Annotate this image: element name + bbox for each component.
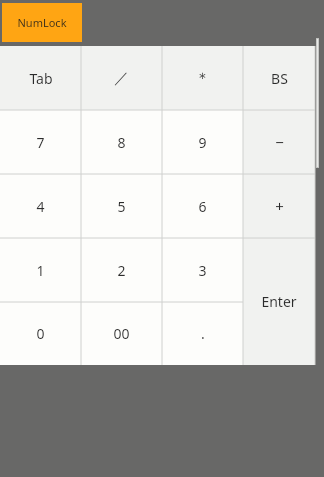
- staticText: 9: [198, 133, 207, 152]
- staticText: +: [275, 196, 284, 216]
- button[interactable]: 7: [0, 110, 81, 174]
- button[interactable]: 6: [162, 174, 243, 238]
- button[interactable]: 2: [81, 238, 162, 302]
- button[interactable]: −: [243, 110, 315, 174]
- staticText: 2: [117, 261, 126, 280]
- button[interactable]: Enter: [243, 238, 315, 365]
- button[interactable]: 3: [162, 238, 243, 302]
- staticText: −: [275, 132, 284, 152]
- staticText: .: [201, 324, 205, 343]
- button[interactable]: BS: [243, 46, 315, 110]
- staticText: 8: [117, 133, 126, 152]
- button[interactable]: 5: [81, 174, 162, 238]
- button[interactable]: 0: [0, 302, 81, 365]
- staticText: 7: [36, 133, 45, 152]
- staticText: ／: [114, 69, 129, 88]
- button[interactable]: NumLock: [2, 3, 82, 42]
- staticText: Enter: [261, 292, 297, 311]
- button[interactable]: 9: [162, 110, 243, 174]
- staticText: 5: [117, 197, 126, 216]
- staticText: 1: [36, 261, 45, 280]
- button[interactable]: 1: [0, 238, 81, 302]
- button[interactable]: .: [162, 302, 243, 365]
- button[interactable]: 8: [81, 110, 162, 174]
- staticText: BS: [271, 69, 288, 88]
- staticText: NumLock: [17, 15, 67, 30]
- staticText: 00: [113, 324, 130, 343]
- staticText: 3: [198, 261, 207, 280]
- staticText: 4: [36, 197, 45, 216]
- button[interactable]: ／: [81, 46, 162, 110]
- staticText: 6: [198, 197, 207, 216]
- staticText: Tab: [29, 69, 53, 88]
- button[interactable]: 4: [0, 174, 81, 238]
- staticText: ＊: [195, 69, 210, 88]
- staticText: 0: [36, 324, 45, 343]
- button[interactable]: 00: [81, 302, 162, 365]
- button[interactable]: Tab: [0, 46, 81, 110]
- button[interactable]: +: [243, 174, 315, 238]
- button[interactable]: ＊: [162, 46, 243, 110]
